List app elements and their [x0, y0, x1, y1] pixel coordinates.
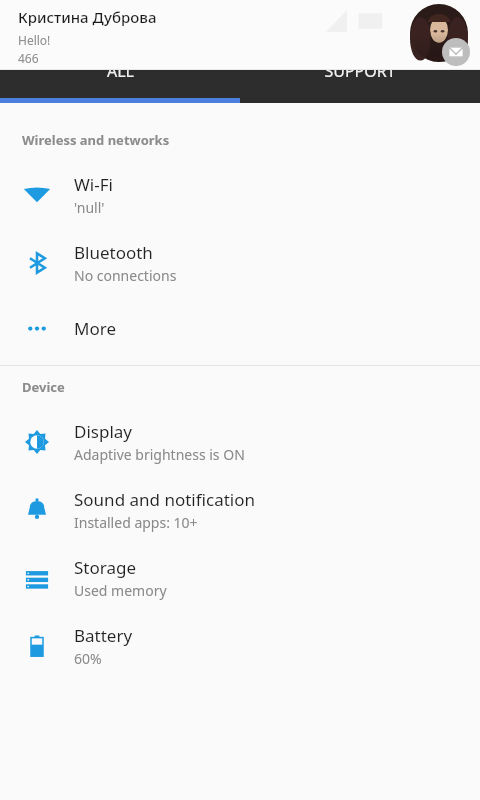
button[interactable]: Wi-Fi — [0, 161, 480, 229]
button[interactable]: SUPPORT — [240, 44, 480, 98]
button[interactable]: Battery — [0, 612, 480, 680]
button[interactable]: Display — [0, 408, 480, 476]
staticText: Adaptive brightness is ON — [74, 445, 245, 464]
staticText: Hello! — [18, 32, 51, 48]
button[interactable]: Message — [442, 38, 470, 66]
staticText: Wi-Fi — [74, 173, 113, 196]
staticText: Sound and notification — [74, 488, 255, 511]
button[interactable]: Кристина Дуброва — [0, 0, 480, 70]
staticText: Кристина Дуброва — [18, 7, 157, 27]
button[interactable]: Sound and notification — [0, 476, 480, 544]
staticText: Battery — [74, 624, 133, 647]
staticText: Installed apps: 10+ — [74, 513, 198, 532]
button[interactable]: ALL — [0, 44, 240, 98]
staticText: More — [74, 317, 116, 340]
staticText: Storage — [74, 556, 137, 579]
staticText: Device — [22, 378, 65, 396]
staticText: Wireless and networks — [22, 131, 170, 149]
button[interactable]: More — [0, 297, 480, 359]
staticText: Used memory — [74, 581, 167, 600]
staticText: SUPPORT — [324, 60, 396, 82]
staticText: No connections — [74, 266, 177, 285]
button[interactable]: Storage — [0, 544, 480, 612]
staticText: 'null' — [74, 198, 105, 217]
button[interactable]: Bluetooth — [0, 229, 480, 297]
staticText: Bluetooth — [74, 241, 153, 264]
button[interactable]: Contact avatar — [410, 4, 468, 62]
staticText: Settings — [22, 0, 102, 29]
staticText: 466 — [18, 50, 39, 66]
staticText: 60% — [74, 649, 102, 668]
staticText: Display — [74, 420, 132, 443]
staticText: ALL — [107, 60, 134, 82]
